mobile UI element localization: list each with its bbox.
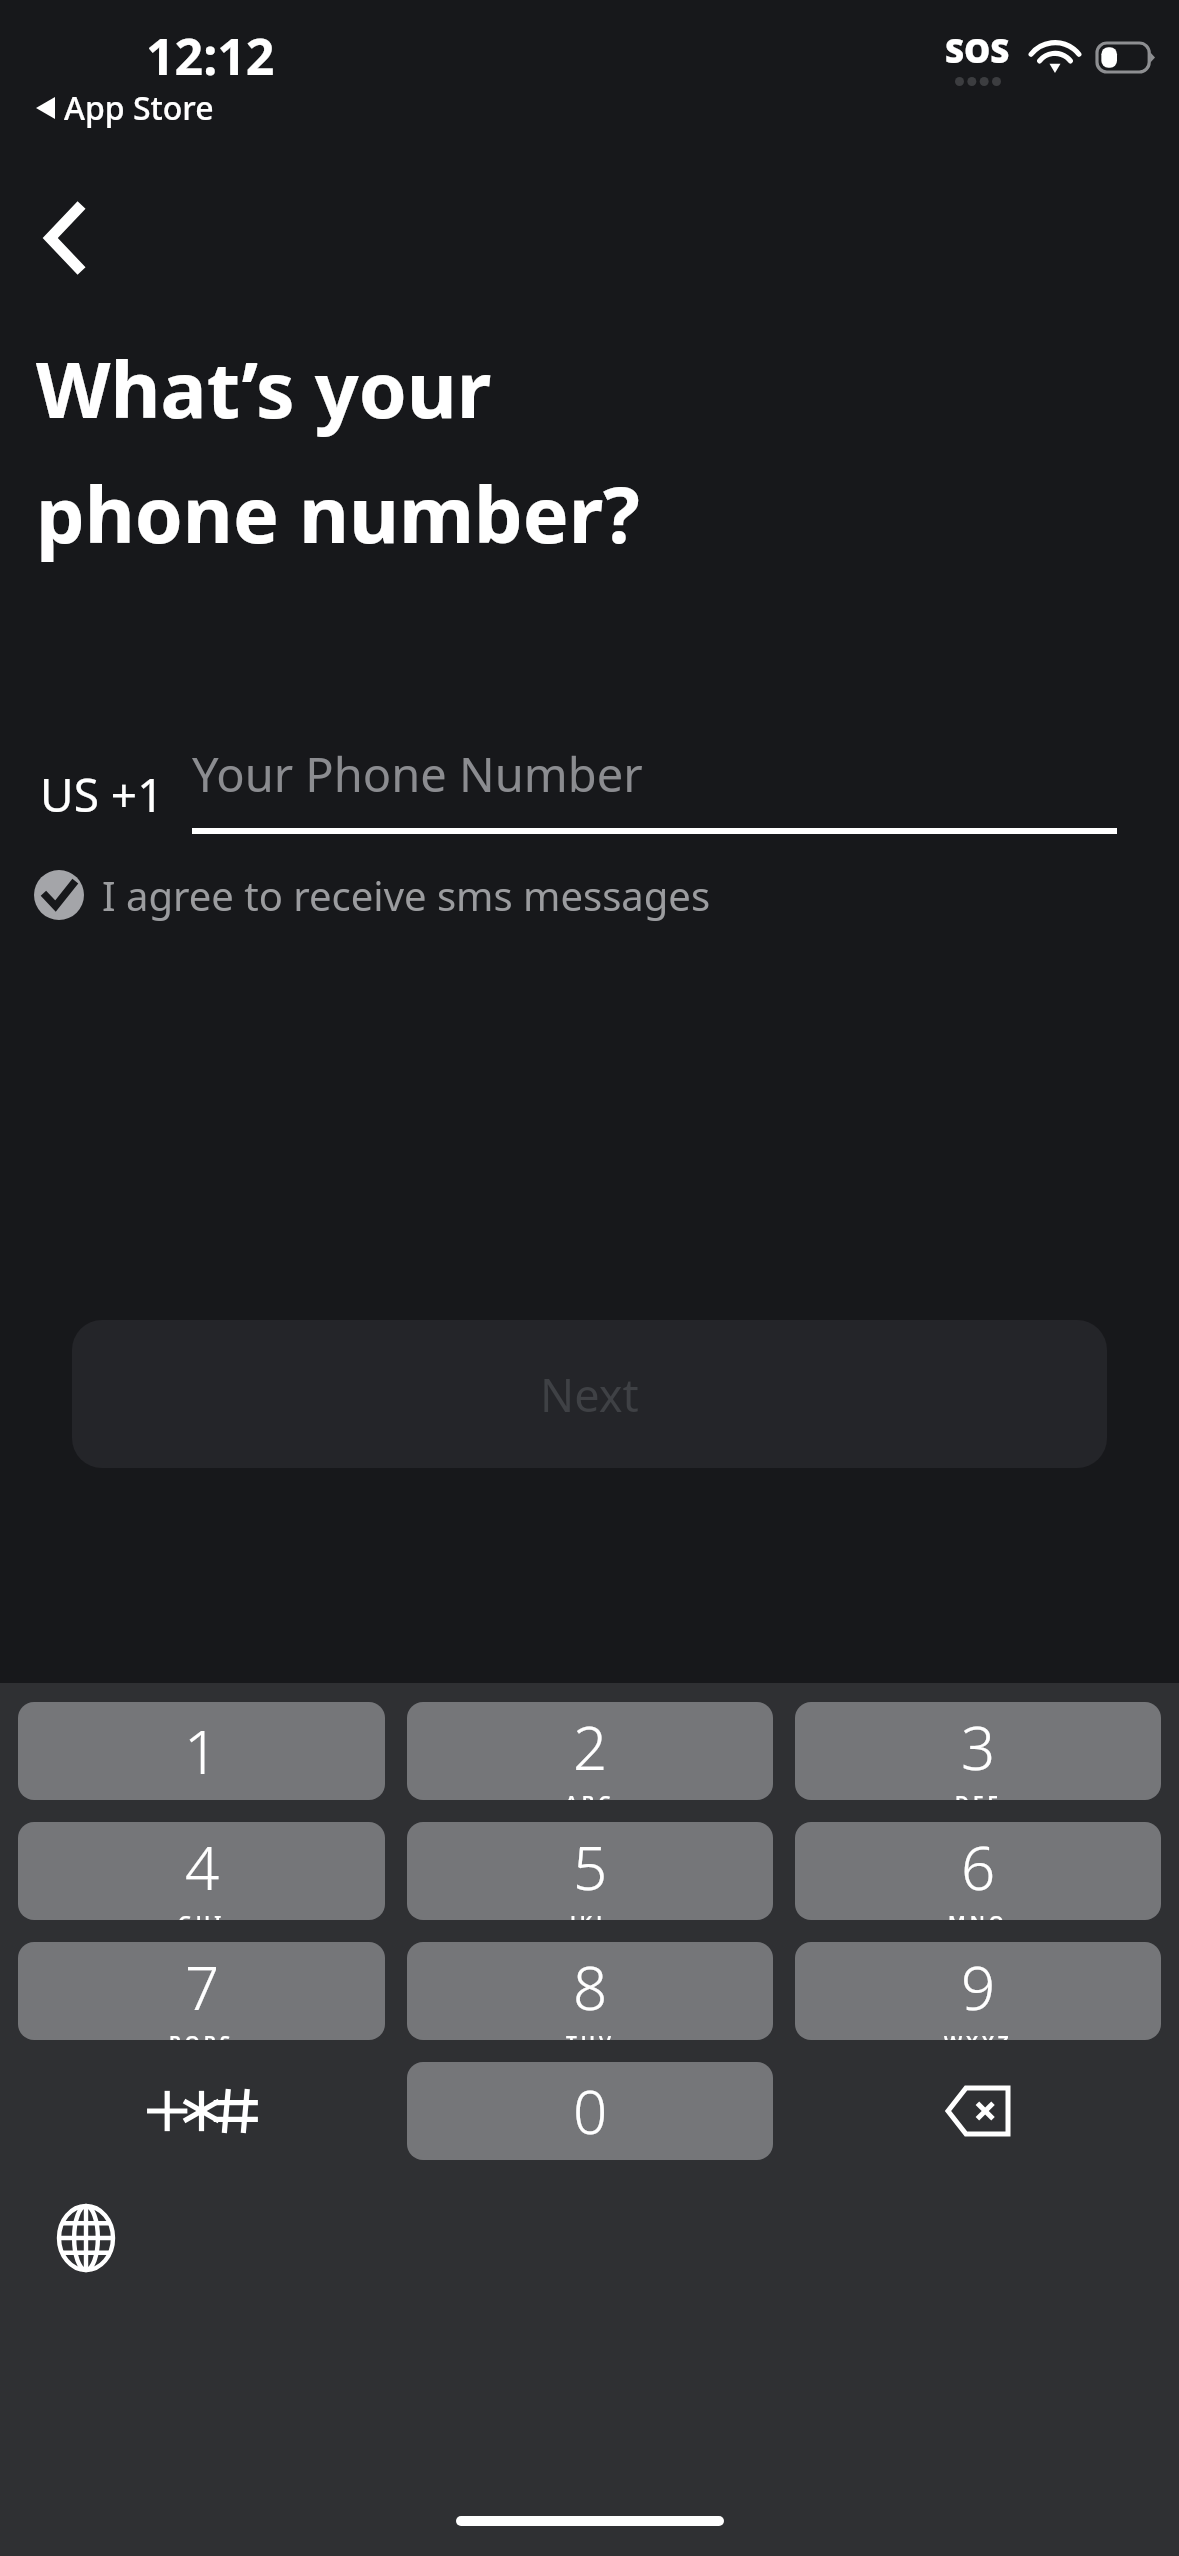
button[interactable]: 5 — [407, 1822, 773, 1920]
staticText: DEF — [955, 1790, 1002, 1800]
button[interactable]: I agree to receive sms messages — [34, 860, 711, 930]
staticText: 4 — [185, 1826, 220, 1908]
staticText: 8 — [573, 1946, 608, 2028]
button[interactable]: Back — [18, 192, 110, 284]
staticText: 9 — [961, 1946, 996, 2028]
button[interactable]: Delete — [795, 2062, 1161, 2160]
staticText: App Store — [64, 86, 214, 130]
staticText: 7 — [185, 1946, 220, 2028]
staticText: Next — [540, 1364, 639, 1425]
button[interactable]: US +1 — [40, 755, 164, 834]
staticText: WXYZ — [944, 2030, 1013, 2040]
staticText: 0 — [573, 2070, 608, 2152]
staticText: PQRS — [169, 2030, 235, 2040]
staticText: 1 — [184, 1710, 219, 1792]
staticText: 12:12 — [146, 22, 275, 90]
button[interactable]: Your Phone Number — [192, 742, 1117, 834]
staticText: TUV — [566, 2030, 615, 2040]
staticText: Your Phone Number — [192, 742, 643, 806]
button[interactable]: 0 — [407, 2062, 773, 2160]
button[interactable]: Symbols — [18, 2062, 385, 2160]
button[interactable]: Change keyboard — [48, 2200, 124, 2276]
button[interactable]: 9 — [795, 1942, 1161, 2040]
button[interactable]: 8 — [407, 1942, 773, 2040]
staticText: SOS — [945, 28, 1010, 73]
staticText: ABC — [565, 1790, 615, 1800]
staticText: What’s your — [36, 336, 492, 441]
button[interactable]: 6 — [795, 1822, 1161, 1920]
button[interactable]: 2 — [407, 1702, 773, 1800]
staticText: 6 — [961, 1826, 996, 1908]
button[interactable]: 4 — [18, 1822, 385, 1920]
staticText: 3 — [961, 1706, 996, 1788]
button[interactable]: 7 — [18, 1942, 385, 2040]
staticText: 5 — [573, 1826, 608, 1908]
staticText: phone number? — [36, 461, 640, 566]
staticText: GHI — [178, 1910, 226, 1920]
staticText: MNO — [948, 1910, 1008, 1920]
staticText: US +1 — [40, 763, 164, 826]
button[interactable]: 3 — [795, 1702, 1161, 1800]
staticText: JKL — [570, 1910, 611, 1920]
staticText: 2 — [573, 1706, 608, 1788]
staticText: I agree to receive sms messages — [102, 868, 711, 922]
button[interactable]: 1 — [18, 1702, 385, 1800]
